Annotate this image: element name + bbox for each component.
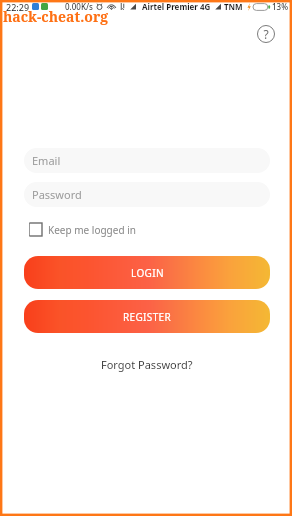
staticText: REGISTER [123,310,172,324]
staticText: Email [32,153,61,168]
staticText: ? [263,26,269,42]
staticText: Password [32,187,82,202]
staticText: TNM [224,1,243,12]
staticText: Forgot Password? [101,357,193,372]
button[interactable]: Keep me logged in [29,221,136,238]
staticText: 22:29 [6,1,30,13]
button[interactable]: REGISTER [24,300,270,333]
button[interactable]: LOGIN [24,256,270,289]
button[interactable]: Forgot Password? [97,355,197,374]
staticText: 0.00K/s [65,1,93,12]
staticText: Airtel Premier 4G [142,1,211,12]
button[interactable]: Password [24,182,270,207]
staticText: 13% [272,1,288,12]
staticText: LOGIN [131,266,164,280]
button[interactable]: Help [253,21,279,47]
staticText: hack-cheat.org [3,7,109,26]
button[interactable]: Email [24,148,270,173]
staticText: Keep me logged in [48,223,136,237]
